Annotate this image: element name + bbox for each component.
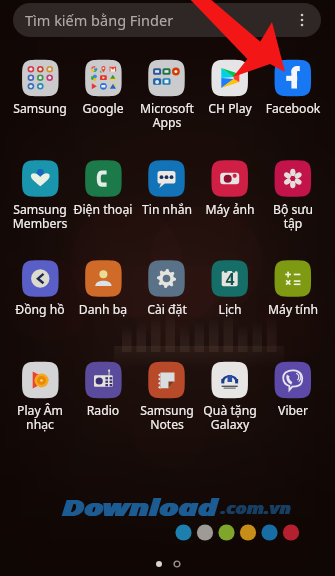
staticText: Download	[62, 491, 218, 523]
staticText: Samsung Notes	[135, 402, 199, 433]
staticText: Google	[71, 100, 135, 117]
staticText: Facebook	[261, 100, 325, 117]
button[interactable]: Đồng hồ	[8, 255, 72, 327]
button[interactable]: Viber	[261, 356, 325, 428]
staticText: Quà tặng Galaxy	[198, 402, 262, 433]
staticText: Điện thoại	[71, 201, 135, 218]
staticText: Radio	[71, 402, 135, 419]
staticText: 4	[225, 268, 235, 290]
button[interactable]: Máy ảnh	[198, 155, 262, 227]
staticText: Danh bạ	[71, 301, 135, 318]
staticText: Đồng hồ	[8, 301, 72, 318]
button[interactable]: Lịch	[198, 255, 262, 327]
staticText: Play Âm nhạc	[8, 402, 72, 433]
staticText: Cài đặt	[135, 301, 199, 318]
staticText: .com.vn	[220, 497, 291, 518]
button[interactable]: Play Âm nhạc	[8, 356, 72, 428]
button[interactable]: More options	[291, 9, 313, 31]
button[interactable]: Danh bạ	[71, 255, 135, 327]
button[interactable]: Facebook	[261, 54, 325, 126]
button[interactable]: CH Play	[198, 54, 262, 126]
staticText: Viber	[261, 402, 325, 419]
button[interactable]: Tìm kiếm bằng Finder	[13, 3, 321, 37]
button[interactable]: Samsung Notes	[135, 356, 199, 428]
staticText: Máy tính	[261, 301, 325, 318]
staticText: Tìm kiếm bằng Finder	[25, 10, 174, 30]
button[interactable]: Microsoft Apps	[135, 54, 199, 126]
staticText: Download	[63, 491, 219, 523]
button[interactable]: Google	[71, 54, 135, 126]
staticText: Máy ảnh	[198, 201, 262, 218]
staticText: Tin nhắn	[135, 201, 199, 218]
button[interactable]: Samsung	[8, 54, 72, 126]
staticText: .com.vn	[221, 497, 292, 518]
staticText: Download	[61, 491, 217, 523]
staticText: Lịch	[198, 301, 262, 318]
button[interactable]: Quà tặng Galaxy	[198, 356, 262, 428]
button[interactable]: Cài đặt	[135, 255, 199, 327]
staticText: Microsoft Apps	[135, 100, 199, 131]
button[interactable]: Máy tính	[261, 255, 325, 327]
other: Pointer arrow	[0, 0, 335, 576]
staticText: .com.vn	[221, 497, 292, 518]
staticText: Samsung Members	[8, 201, 72, 232]
button[interactable]: Radio	[71, 356, 135, 428]
button[interactable]: Samsung Members	[8, 155, 72, 227]
staticText: Bộ sưu tập	[261, 201, 325, 232]
button[interactable]: Điện thoại	[71, 155, 135, 227]
staticText: Samsung	[8, 100, 72, 117]
button[interactable]: Bộ sưu tập	[261, 155, 325, 227]
staticText: CH Play	[198, 100, 262, 117]
button[interactable]: Tin nhắn	[135, 155, 199, 227]
staticText: Download	[62, 491, 218, 523]
